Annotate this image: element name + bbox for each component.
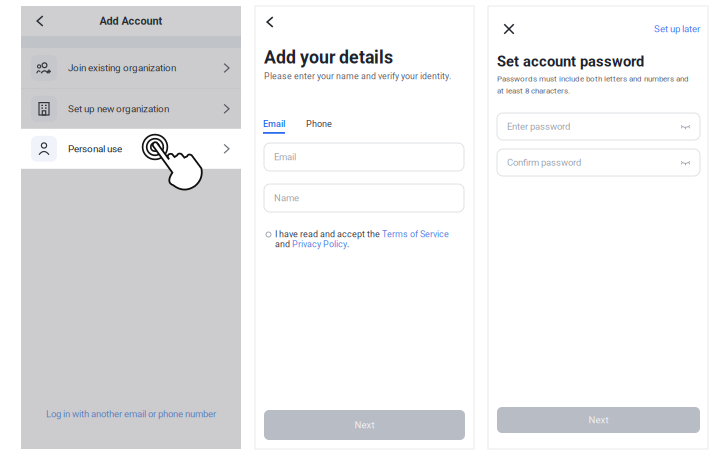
staticText: Set up new organization xyxy=(68,103,169,115)
staticText: Set account password xyxy=(497,53,644,70)
button[interactable]: Next xyxy=(497,407,700,433)
button[interactable]: Log in with another email or phone numbe… xyxy=(21,403,241,425)
staticText: Terms of Service xyxy=(382,229,449,239)
button[interactable]: Set up later xyxy=(640,17,700,41)
button[interactable]: Join existing organization xyxy=(21,48,241,88)
button[interactable]: Phone xyxy=(306,118,336,130)
staticText: and xyxy=(275,239,292,249)
staticText: Add your details xyxy=(264,47,393,68)
button[interactable]: Email xyxy=(263,118,293,130)
button[interactable]: Next xyxy=(264,410,465,440)
button[interactable]: Back xyxy=(258,10,282,34)
staticText: Name xyxy=(274,192,299,204)
staticText: Privacy Policy xyxy=(292,239,347,249)
staticText: I have read and accept the xyxy=(275,229,382,239)
button[interactable]: Set up new organization xyxy=(21,89,241,129)
staticText: Add Account xyxy=(99,15,162,27)
button[interactable]: Personal use xyxy=(21,129,241,169)
staticText: at least 8 characters. xyxy=(497,86,570,95)
staticText: Next xyxy=(354,419,374,431)
staticText: Confirm password xyxy=(507,157,581,168)
staticText: Set up later xyxy=(654,23,700,35)
staticText: Next xyxy=(588,414,608,426)
staticText: Please enter your name and verify your i… xyxy=(264,71,451,81)
staticText: Personal use xyxy=(68,143,122,155)
button[interactable]: Back xyxy=(27,6,53,36)
staticText: Join existing organization xyxy=(68,62,176,74)
staticText: Enter password xyxy=(507,121,570,132)
button[interactable]: Close xyxy=(497,17,521,41)
staticText: . xyxy=(347,239,349,249)
staticText: Email xyxy=(263,119,285,129)
staticText: Passwords must include both letters and … xyxy=(497,74,689,83)
staticText: Log in with another email or phone numbe… xyxy=(46,408,216,420)
staticText: Email xyxy=(274,151,296,163)
staticText: Phone xyxy=(306,119,332,129)
